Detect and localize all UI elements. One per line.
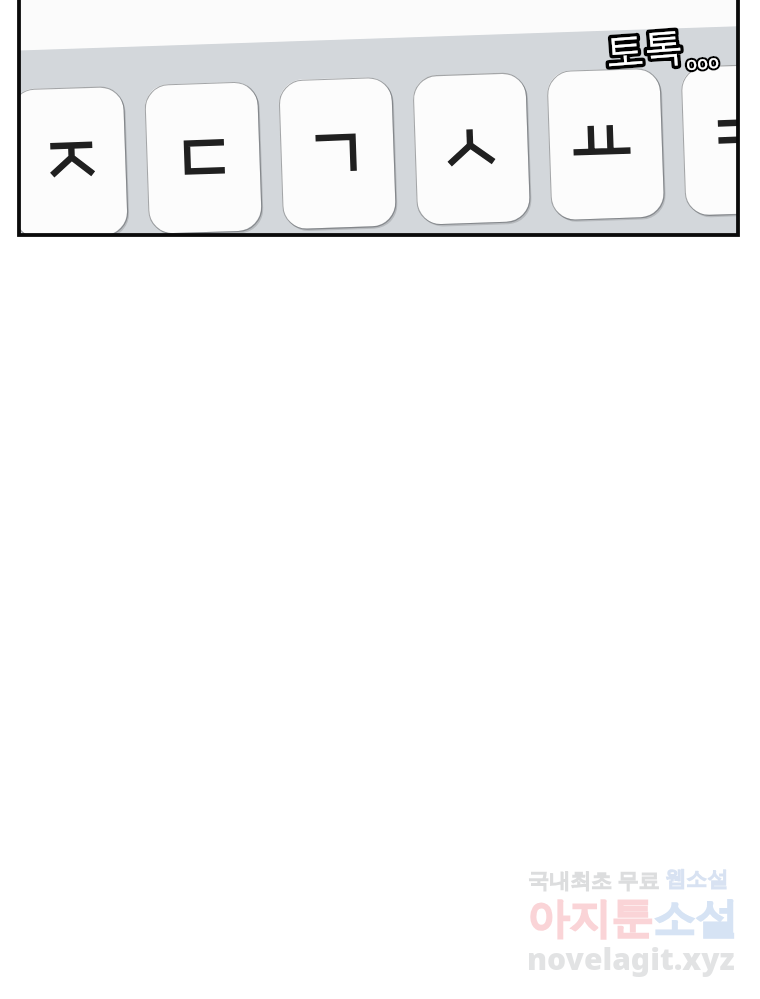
staticText: 아지툰 bbox=[527, 893, 653, 946]
staticText: 토톡 bbox=[603, 21, 685, 76]
button[interactable]: ㄱ key bbox=[275, 78, 393, 231]
button[interactable]: ㄷ key bbox=[141, 83, 259, 236]
staticText: 토톡 bbox=[603, 21, 685, 76]
button[interactable]: ㅋ key bbox=[677, 65, 760, 218]
button[interactable]: novelagit.xyz bbox=[527, 938, 735, 979]
staticText: 국내최초 무료 bbox=[528, 866, 665, 895]
button[interactable]: ㅅ key bbox=[409, 74, 527, 227]
button[interactable]: ㅈ key bbox=[7, 88, 125, 241]
button[interactable]: ㅛ key bbox=[543, 69, 661, 222]
staticText: ooo bbox=[685, 49, 720, 76]
staticText: 웹소설 bbox=[665, 866, 728, 892]
staticText: ooo bbox=[685, 49, 720, 76]
staticText: 소설 bbox=[653, 893, 737, 946]
staticText: novelagit.xyz bbox=[527, 938, 735, 979]
